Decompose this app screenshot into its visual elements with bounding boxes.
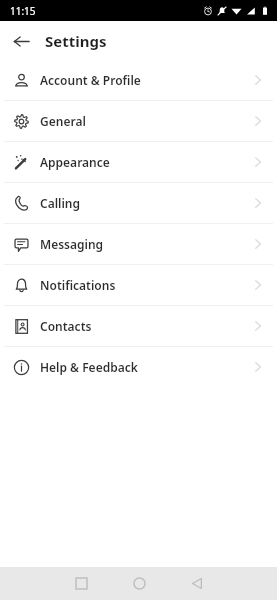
button[interactable]: Back (175, 567, 219, 600)
staticText: Appearance (40, 154, 110, 170)
button[interactable]: General (0, 101, 277, 141)
staticText: 11:15 (10, 4, 36, 18)
button[interactable]: Appearance (0, 142, 277, 182)
button[interactable]: Notifications (0, 265, 277, 305)
button[interactable]: Messaging (0, 224, 277, 264)
staticText: Help & Feedback (40, 359, 138, 375)
button[interactable]: Home (117, 567, 161, 600)
button[interactable]: Calling (0, 183, 277, 223)
button[interactable]: Recent apps (59, 567, 103, 600)
staticText: General (40, 113, 86, 129)
staticText: Settings (45, 31, 107, 51)
staticText: Contacts (40, 318, 92, 334)
button[interactable]: Contacts (0, 306, 277, 346)
staticText: Messaging (40, 236, 104, 252)
staticText: Notifications (40, 277, 116, 293)
button[interactable]: Help & Feedback (0, 347, 277, 387)
staticText: Calling (40, 195, 81, 211)
button[interactable]: Back (4, 24, 38, 58)
staticText: Account & Profile (40, 72, 141, 88)
button[interactable]: Account & Profile (0, 60, 277, 100)
